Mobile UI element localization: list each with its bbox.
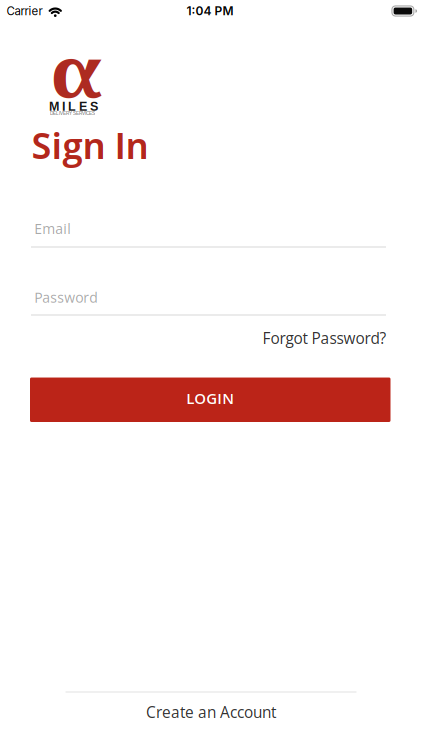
- staticText: Carrier: [6, 4, 42, 18]
- staticText: Password: [34, 288, 98, 307]
- staticText: Sign In: [31, 120, 148, 169]
- button[interactable]: Password: [31, 288, 386, 315]
- button[interactable]: Create an Account: [146, 701, 276, 722]
- staticText: E: [79, 99, 87, 113]
- staticText: α: [53, 22, 100, 118]
- staticText: M: [49, 99, 59, 113]
- staticText: I: [62, 99, 65, 113]
- staticText: Email: [34, 219, 71, 238]
- staticText: Forgot Password?: [262, 327, 386, 348]
- staticText: DELIVERY SERVICES: [50, 111, 95, 116]
- staticText: LOGIN: [186, 388, 234, 408]
- button[interactable]: Email: [31, 219, 386, 247]
- staticText: S: [90, 99, 98, 113]
- button[interactable]: LOGIN: [30, 377, 390, 422]
- staticText: 1:04 PM: [186, 4, 233, 18]
- button[interactable]: Forgot Password?: [262, 327, 386, 348]
- staticText: L: [68, 99, 76, 113]
- staticText: Create an Account: [146, 701, 276, 722]
